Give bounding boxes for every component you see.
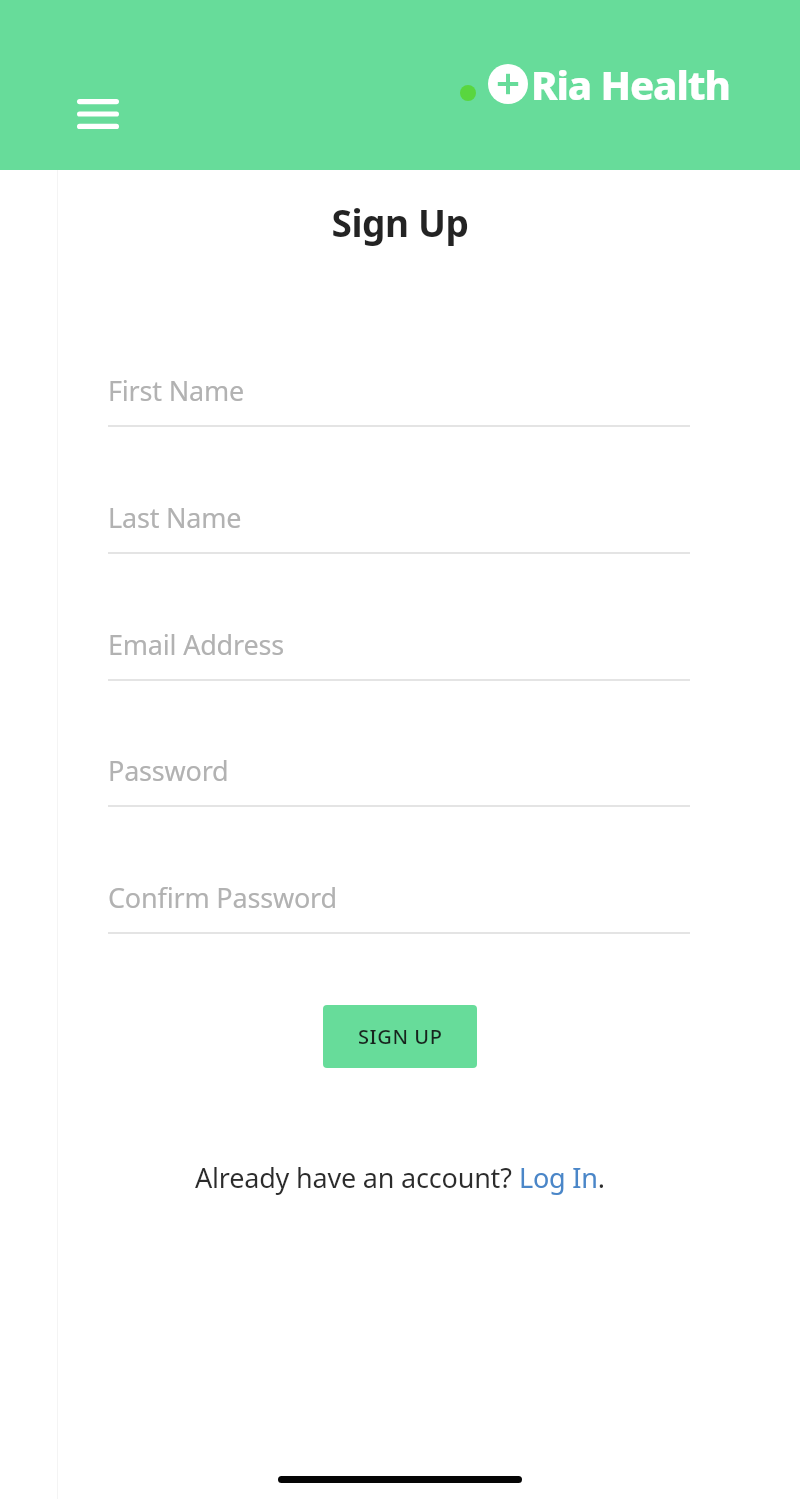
staticText: Email Address — [108, 626, 284, 663]
staticText: Sign Up — [331, 197, 469, 247]
staticText: Already have an account? — [195, 1159, 519, 1196]
button[interactable]: Last Name — [108, 491, 690, 554]
staticText: Confirm Password — [108, 879, 337, 916]
staticText: SIGN UP — [358, 1023, 443, 1050]
staticText: Last Name — [108, 499, 242, 536]
button[interactable]: SIGN UP — [323, 1005, 477, 1068]
button[interactable]: Password — [108, 744, 690, 807]
staticText: Log In. — [519, 1159, 605, 1196]
button[interactable]: First Name — [108, 364, 690, 427]
button[interactable]: Ria Health — [460, 57, 730, 111]
button[interactable]: Confirm Password — [108, 871, 690, 934]
staticText: Ria Health — [531, 57, 730, 111]
button[interactable]: Email Address — [108, 618, 690, 681]
staticText: First Name — [108, 372, 244, 409]
button[interactable]: Open navigation menu — [60, 79, 136, 149]
staticText: Password — [108, 752, 229, 789]
button[interactable]: Log In. — [519, 1159, 605, 1196]
